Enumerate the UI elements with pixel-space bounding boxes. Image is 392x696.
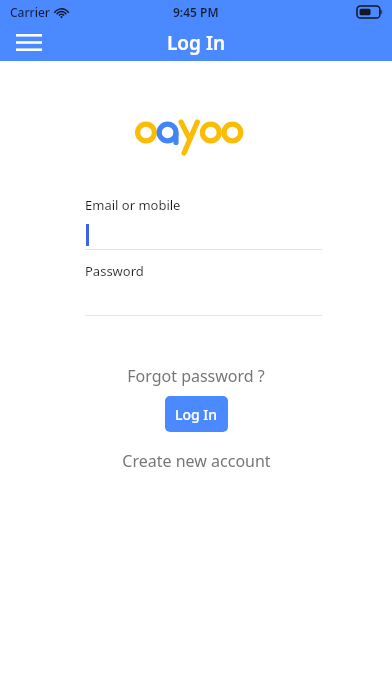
staticText: Create new account: [122, 450, 271, 472]
staticText: Password: [85, 262, 144, 280]
staticText: Email or mobile: [85, 196, 181, 214]
staticText: Log In: [175, 405, 218, 424]
button[interactable]: Log In: [165, 396, 228, 432]
staticText: 9:45 PM: [173, 4, 219, 20]
staticText: Log In: [167, 30, 226, 56]
staticText: Carrier: [10, 4, 50, 20]
button[interactable]: Open navigation menu: [9, 24, 49, 61]
staticText: Forgot password ?: [127, 365, 265, 387]
button[interactable]: Forgot password ?: [115, 362, 277, 390]
button[interactable]: Create new account: [110, 447, 283, 475]
